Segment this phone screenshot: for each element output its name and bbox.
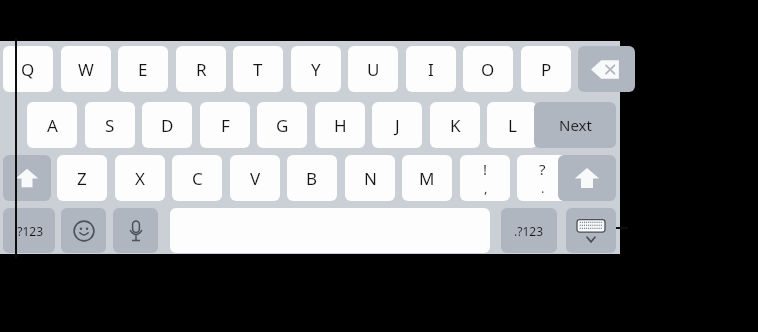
staticText: V: [250, 167, 261, 190]
button[interactable]: P: [521, 46, 571, 92]
button[interactable]: Emoji: [61, 208, 106, 253]
button[interactable]: T: [233, 46, 283, 92]
staticText: X: [135, 167, 145, 190]
button[interactable]: E: [118, 46, 168, 92]
staticText: Y: [311, 58, 321, 81]
button[interactable]: Shift: [558, 155, 616, 201]
staticText: S: [105, 114, 115, 137]
button[interactable]: A: [27, 102, 77, 148]
staticText: F: [221, 114, 230, 137]
button[interactable]: Q: [3, 46, 53, 92]
button[interactable]: U: [348, 46, 398, 92]
button[interactable]: H: [315, 102, 365, 148]
button[interactable]: .?123: [3, 208, 55, 253]
button[interactable]: S: [85, 102, 135, 148]
staticText: Z: [77, 167, 87, 190]
staticText: O: [481, 58, 495, 81]
staticText: .?123: [14, 223, 44, 239]
staticText: K: [450, 114, 461, 137]
staticText: C: [192, 167, 203, 190]
button[interactable]: W: [61, 46, 111, 92]
button[interactable]: Y: [291, 46, 341, 92]
button[interactable]: L: [487, 102, 537, 148]
button[interactable]: F: [200, 102, 250, 148]
staticText: R: [196, 58, 207, 81]
staticText: .: [541, 179, 545, 197]
staticText: U: [367, 58, 380, 81]
staticText: D: [161, 114, 174, 137]
button[interactable]: I: [406, 46, 456, 92]
button[interactable]: .?123: [501, 208, 557, 253]
button[interactable]: ?: [517, 155, 567, 201]
button[interactable]: Hide keyboard: [566, 208, 616, 253]
button[interactable]: K: [430, 102, 480, 148]
staticText: .?123: [514, 223, 544, 239]
staticText: L: [508, 114, 517, 137]
button[interactable]: B: [287, 155, 337, 201]
staticText: N: [364, 167, 377, 190]
button[interactable]: X: [115, 155, 165, 201]
staticText: H: [334, 114, 347, 137]
staticText: B: [306, 167, 318, 190]
staticText: A: [47, 114, 58, 137]
staticText: P: [541, 58, 552, 81]
staticText: Q: [21, 58, 35, 81]
button[interactable]: J: [372, 102, 422, 148]
button[interactable]: Shift: [3, 155, 51, 201]
button[interactable]: Z: [57, 155, 107, 201]
staticText: ?: [539, 159, 546, 179]
button[interactable]: Backspace: [578, 46, 635, 92]
staticText: T: [253, 58, 263, 81]
staticText: ,: [484, 179, 488, 197]
button[interactable]: G: [257, 102, 307, 148]
button[interactable]: Dictation: [113, 208, 158, 253]
staticText: J: [395, 114, 400, 137]
button[interactable]: R: [176, 46, 226, 92]
staticText: W: [78, 58, 94, 81]
button[interactable]: D: [142, 102, 192, 148]
staticText: E: [138, 58, 148, 81]
staticText: I: [428, 58, 434, 81]
button[interactable]: M: [402, 155, 452, 201]
button[interactable]: N: [345, 155, 395, 201]
button[interactable]: !: [460, 155, 510, 201]
button[interactable]: C: [172, 155, 222, 201]
staticText: M: [419, 167, 435, 190]
button[interactable]: Next: [534, 102, 616, 148]
button[interactable]: O: [463, 46, 513, 92]
staticText: Next: [559, 115, 592, 135]
staticText: !: [483, 159, 488, 179]
staticText: G: [276, 114, 289, 137]
button[interactable]: V: [230, 155, 280, 201]
